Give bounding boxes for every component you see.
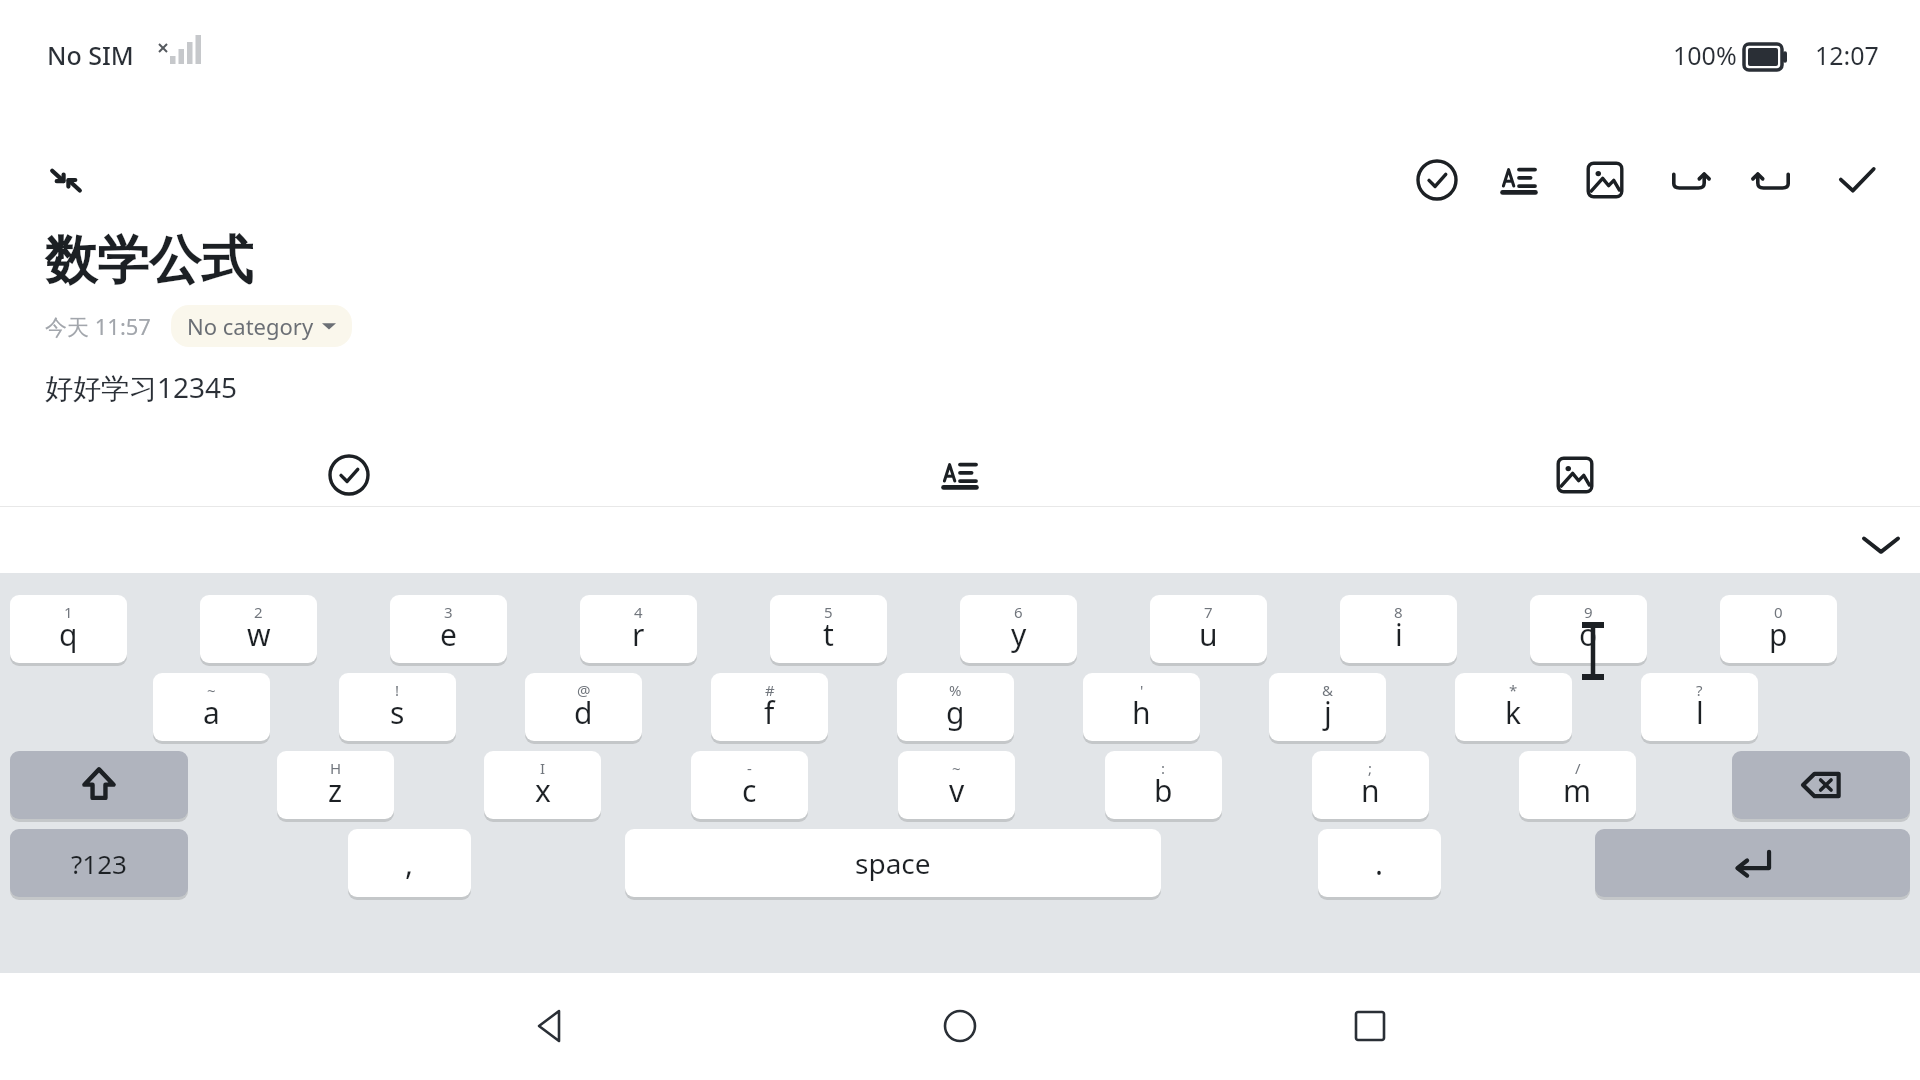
staticText: ~ xyxy=(207,680,216,700)
staticText: v xyxy=(949,770,965,811)
staticText: h xyxy=(1132,692,1151,733)
staticText: j xyxy=(1324,692,1332,733)
staticText: @ xyxy=(577,680,591,700)
staticText: % xyxy=(949,680,962,700)
button[interactable]: Key i xyxy=(1340,595,1457,663)
button[interactable]: Recents xyxy=(1340,996,1400,1056)
staticText: w xyxy=(247,614,271,655)
staticText: a xyxy=(203,692,220,733)
staticText: 今天 11:57 xyxy=(45,311,151,341)
staticText: ; xyxy=(1368,758,1373,778)
staticText: o xyxy=(1579,614,1598,655)
staticText: r xyxy=(632,614,645,655)
button[interactable]: Key a xyxy=(153,673,270,741)
staticText: 6 xyxy=(1014,602,1023,622)
staticText: y xyxy=(1011,614,1027,655)
staticText: k xyxy=(1505,692,1522,733)
staticText: I xyxy=(540,758,546,778)
button[interactable]: Comma xyxy=(348,829,471,897)
button[interactable]: Key o xyxy=(1530,595,1647,663)
staticText: ~ xyxy=(952,758,961,778)
staticText: 8 xyxy=(1394,602,1403,622)
staticText: 好好学习12345 xyxy=(45,368,238,406)
staticText: 9 xyxy=(1584,602,1593,622)
staticText: # xyxy=(765,680,775,700)
staticText: 1 xyxy=(64,602,73,622)
button[interactable]: Home xyxy=(930,996,990,1056)
button[interactable]: Checklist xyxy=(319,445,379,505)
button[interactable]: Back xyxy=(520,996,580,1056)
staticText: b xyxy=(1154,770,1173,811)
staticText: p xyxy=(1769,614,1788,655)
button[interactable]: Key l xyxy=(1641,673,1758,741)
staticText: 0 xyxy=(1774,602,1783,622)
staticText: u xyxy=(1199,614,1218,655)
staticText: g xyxy=(946,692,965,733)
button[interactable]: Key p xyxy=(1720,595,1837,663)
button[interactable]: Collapse xyxy=(36,150,96,210)
button[interactable]: Key f xyxy=(711,673,828,741)
button[interactable]: Key r xyxy=(580,595,697,663)
staticText: * xyxy=(1509,680,1518,700)
staticText: space xyxy=(855,844,931,882)
staticText: H xyxy=(330,758,342,778)
staticText: 数学公式 xyxy=(45,228,253,294)
button[interactable]: Insert image xyxy=(1575,150,1635,210)
button[interactable]: Key v xyxy=(898,751,1015,819)
button[interactable]: Key s xyxy=(339,673,456,741)
button[interactable]: Key d xyxy=(525,673,642,741)
button[interactable]: Redo xyxy=(1743,150,1803,210)
staticText: No SIM xyxy=(47,38,134,72)
button[interactable]: Done xyxy=(1827,150,1887,210)
button[interactable]: Hide keyboard xyxy=(1852,516,1910,574)
button[interactable]: Text format xyxy=(932,445,992,505)
staticText: 4 xyxy=(634,602,643,622)
button[interactable]: Checklist xyxy=(1407,150,1467,210)
button[interactable]: Key h xyxy=(1083,673,1200,741)
staticText: z xyxy=(328,770,343,811)
staticText: ! xyxy=(395,680,400,700)
button[interactable]: Key j xyxy=(1269,673,1386,741)
button[interactable]: Period xyxy=(1318,829,1441,897)
button[interactable]: Undo xyxy=(1659,150,1719,210)
staticText: i xyxy=(1395,614,1403,655)
button[interactable]: Key c xyxy=(691,751,808,819)
staticText: d xyxy=(574,692,593,733)
staticText: s xyxy=(390,692,405,733)
staticText: m xyxy=(1563,770,1592,811)
button[interactable]: Key b xyxy=(1105,751,1222,819)
button[interactable]: Key q xyxy=(10,595,127,663)
button[interactable]: Text format xyxy=(1491,150,1551,210)
staticText: n xyxy=(1361,770,1380,811)
button[interactable]: Shift xyxy=(10,751,188,819)
staticText: l xyxy=(1696,692,1704,733)
staticText: & xyxy=(1322,680,1333,700)
button[interactable]: Backspace xyxy=(1732,751,1910,819)
button[interactable]: Space xyxy=(625,829,1161,897)
staticText: 7 xyxy=(1204,602,1213,622)
button[interactable]: Key z xyxy=(277,751,394,819)
button[interactable]: Enter xyxy=(1595,829,1910,897)
button[interactable]: Key g xyxy=(897,673,1014,741)
staticText: 2 xyxy=(254,602,263,622)
button[interactable]: Key m xyxy=(1519,751,1636,819)
button[interactable]: No category xyxy=(171,305,352,347)
staticText: / xyxy=(1575,758,1581,778)
staticText: 3 xyxy=(444,602,453,622)
button[interactable]: Key w xyxy=(200,595,317,663)
staticText: - xyxy=(747,758,752,778)
staticText: t xyxy=(823,614,834,655)
button[interactable]: Insert image xyxy=(1545,445,1605,505)
button[interactable]: Symbols xyxy=(10,829,188,897)
button[interactable]: Key t xyxy=(770,595,887,663)
button[interactable]: Key y xyxy=(960,595,1077,663)
button[interactable]: Key u xyxy=(1150,595,1267,663)
staticText: x xyxy=(535,770,551,811)
button[interactable]: Key n xyxy=(1312,751,1429,819)
staticText: q xyxy=(59,614,78,655)
staticText: ? xyxy=(1696,680,1703,700)
button[interactable]: Key x xyxy=(484,751,601,819)
button[interactable]: Key k xyxy=(1455,673,1572,741)
button[interactable]: Key e xyxy=(390,595,507,663)
staticText: 12:07 xyxy=(1815,38,1879,72)
